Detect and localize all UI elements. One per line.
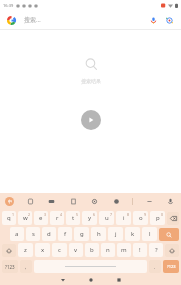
staticText: ? — [155, 246, 158, 254]
button[interactable]: More — [144, 196, 155, 207]
button[interactable]: v — [69, 243, 83, 257]
staticText: s — [32, 230, 35, 238]
staticText: 搜索… — [24, 16, 147, 24]
staticText: q — [7, 214, 11, 222]
staticText: d — [47, 230, 51, 238]
button[interactable]: Settings — [89, 196, 100, 207]
staticText: 7 — [110, 212, 113, 217]
staticText: 6 — [93, 212, 96, 217]
button[interactable]: Voice input — [165, 196, 176, 207]
button[interactable]: Clipboard — [25, 196, 36, 207]
staticText: . — [154, 264, 156, 270]
button[interactable]: j — [108, 227, 123, 241]
staticText: ?123 — [5, 264, 15, 270]
button[interactable]: Back — [56, 274, 70, 285]
staticText: 搜索结果 — [81, 78, 101, 84]
button[interactable]: b — [85, 243, 99, 257]
button[interactable]: 7 — [99, 211, 114, 225]
staticText: k — [131, 230, 135, 238]
button[interactable]: Search — [159, 228, 179, 241]
staticText: g — [80, 230, 84, 238]
staticText: ! — [139, 246, 141, 254]
button[interactable]: ? — [149, 243, 163, 257]
staticText: t — [72, 214, 75, 222]
button[interactable]: 4 — [50, 211, 64, 225]
button[interactable]: l — [142, 227, 157, 241]
staticText: 中 — [8, 199, 12, 204]
staticText: x — [41, 246, 45, 254]
button[interactable]: Shift — [2, 244, 16, 257]
staticText: 1 — [12, 212, 15, 217]
staticText: c — [58, 246, 61, 254]
staticText: j — [115, 230, 117, 238]
button[interactable]: Numbers — [163, 260, 179, 273]
staticText: 4 — [60, 212, 63, 217]
staticText: , — [25, 264, 27, 270]
button[interactable]: , — [20, 260, 32, 273]
button[interactable]: Play — [81, 110, 101, 130]
button[interactable]: f — [58, 227, 72, 241]
button[interactable]: 9 — [133, 211, 148, 225]
button[interactable]: g — [74, 227, 89, 241]
staticText: 5 — [76, 212, 79, 217]
button[interactable]: 6 — [82, 211, 97, 225]
button[interactable]: Theme — [111, 196, 122, 207]
staticText: e — [39, 214, 43, 222]
staticText: y — [88, 214, 92, 222]
button[interactable]: 1 — [2, 211, 16, 225]
button[interactable]: Input method — [5, 197, 14, 206]
button[interactable]: ! — [133, 243, 147, 257]
button[interactable]: Recents — [112, 274, 126, 285]
button[interactable]: Backspace — [167, 212, 179, 225]
button[interactable]: s — [26, 227, 40, 241]
staticText: b — [90, 246, 94, 254]
staticText: o — [139, 214, 143, 222]
button[interactable]: 2 — [18, 211, 32, 225]
staticText: 3 — [44, 212, 47, 217]
button[interactable]: x — [35, 243, 50, 257]
button[interactable]: Sticker — [46, 196, 57, 207]
staticText: 2 — [28, 212, 31, 217]
staticText: a — [15, 230, 19, 238]
button[interactable]: 5 — [66, 211, 80, 225]
button[interactable]: k — [125, 227, 140, 241]
staticText: w — [23, 214, 28, 222]
staticText: 9 — [144, 212, 147, 217]
button[interactable]: ?123 — [2, 260, 18, 273]
button[interactable]: Voice search — [147, 14, 159, 26]
button[interactable]: Shift — [165, 244, 179, 257]
button[interactable]: z — [18, 243, 33, 257]
button[interactable]: d — [42, 227, 56, 241]
staticText: n — [106, 246, 110, 254]
button[interactable]: c — [52, 243, 67, 257]
staticText: f — [64, 230, 67, 238]
button[interactable]: Google Lens — [163, 14, 175, 26]
button[interactable]: 8 — [116, 211, 131, 225]
button[interactable]: Space — [34, 260, 147, 273]
button[interactable]: n — [101, 243, 115, 257]
button[interactable]: 0 — [150, 211, 165, 225]
button[interactable]: h — [91, 227, 106, 241]
staticText: h — [97, 230, 101, 238]
button[interactable]: 3 — [34, 211, 48, 225]
button[interactable]: m — [117, 243, 131, 257]
button[interactable]: Home — [84, 274, 98, 285]
staticText: l — [149, 230, 151, 238]
button[interactable]: a — [10, 227, 24, 241]
staticText: 8 — [127, 212, 130, 217]
staticText: 16:39 — [3, 3, 14, 8]
staticText: z — [24, 246, 27, 254]
staticText: p — [156, 214, 160, 222]
staticText: 0 — [161, 212, 164, 217]
staticText: v — [74, 246, 78, 254]
button[interactable]: . — [149, 260, 161, 273]
button[interactable]: Google — [6, 15, 17, 26]
staticText: m — [121, 246, 127, 254]
button[interactable]: Translate — [68, 196, 79, 207]
staticText: ?123 — [167, 264, 176, 269]
staticText: u — [105, 214, 109, 222]
staticText: r — [56, 214, 59, 222]
staticText: i — [123, 214, 125, 222]
